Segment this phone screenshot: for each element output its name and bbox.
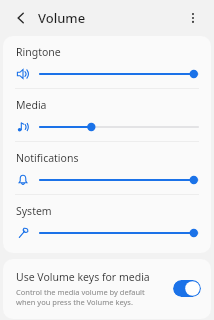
staticText: Media [16,98,47,112]
button[interactable]: Media [3,89,211,141]
button[interactable]: System [3,195,211,247]
staticText: Use Volume keys for media [16,270,150,284]
button[interactable]: Back [8,5,34,31]
button[interactable]: Use Volume keys for media [3,259,211,319]
button[interactable]: Use Volume keys for media toggle [173,280,201,297]
staticText: Ringtone [16,45,61,59]
staticText: Control the media volume by default when… [16,287,165,307]
staticText: Volume [38,9,86,27]
button[interactable]: More options [180,5,206,31]
button[interactable]: Ringtone [3,36,211,88]
button[interactable]: Notifications [3,142,211,194]
staticText: System [16,204,52,218]
staticText: Notifications [16,151,79,165]
